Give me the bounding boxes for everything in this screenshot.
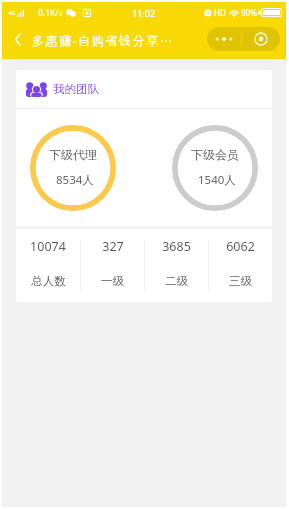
staticText: 下级代理 [49, 147, 97, 162]
staticText: 10074 [30, 238, 66, 255]
staticText: 90% [241, 7, 257, 18]
staticText: 总人数 [31, 274, 66, 288]
staticText: 4G [8, 9, 16, 17]
staticText: 11:02 [132, 7, 156, 19]
staticText: 二级 [165, 274, 188, 288]
button[interactable]: 10074 [16, 229, 80, 302]
staticText: 1540人 [198, 172, 236, 188]
button[interactable]: 327 [81, 229, 144, 302]
button[interactable]: 下级会员 [172, 125, 258, 211]
button[interactable]: 6062 [209, 229, 272, 302]
staticText: 下级会员 [191, 147, 239, 162]
button[interactable]: Menu [207, 27, 280, 51]
staticText: 8534人 [56, 172, 94, 188]
staticText: 0.1K/s [38, 7, 63, 19]
button[interactable]: Back [2, 23, 30, 59]
staticText: 6062 [226, 238, 255, 255]
staticText: 多惠赚-自购省钱分享⋯ [32, 32, 174, 49]
staticText: HD [214, 7, 226, 18]
button[interactable]: 3685 [145, 229, 208, 302]
staticText: 三级 [229, 274, 252, 288]
staticText: 327 [102, 238, 124, 255]
staticText: 我的团队 [53, 82, 99, 96]
staticText: 一级 [101, 274, 124, 288]
button[interactable]: 下级代理 [30, 125, 116, 211]
staticText: 3685 [162, 238, 191, 255]
